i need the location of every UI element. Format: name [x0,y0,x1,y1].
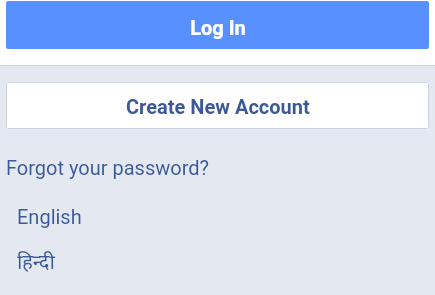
button[interactable]: Log In [6,1,429,49]
staticText: Log In [190,16,246,39]
button[interactable]: Forgot your password? [0,143,435,191]
staticText: Create New Account [126,95,310,118]
staticText: English [17,205,82,228]
button[interactable]: हिन्दी [0,237,435,285]
button[interactable]: Create New Account [6,82,429,129]
button[interactable]: English [0,192,435,240]
staticText: हिन्दी [17,248,55,275]
staticText: Forgot your password? [6,156,209,179]
